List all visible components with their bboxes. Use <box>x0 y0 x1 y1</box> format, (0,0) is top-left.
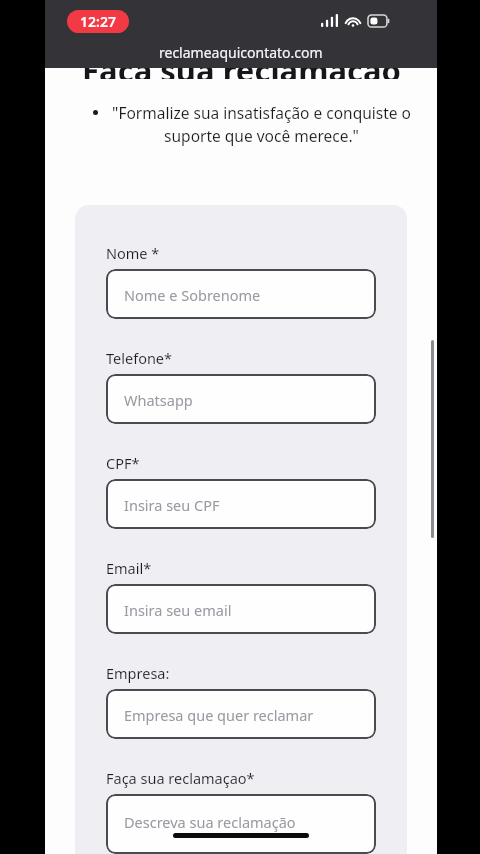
staticText: Whatsapp <box>124 390 193 410</box>
other: Battery <box>368 15 390 27</box>
staticText: Descreva sua reclamação <box>124 812 296 832</box>
button[interactable]: Empresa: <box>106 663 376 739</box>
staticText: Nome e Sobrenome <box>124 285 261 305</box>
staticText: Faça sua reclamação <box>82 58 401 79</box>
button[interactable]: Telefone* <box>106 348 376 424</box>
staticText: 12:27 <box>80 12 116 31</box>
staticText: Telefone* <box>106 348 173 368</box>
staticText: reclameaquicontato.com <box>159 43 323 62</box>
staticText: Faça sua reclamaçao* <box>106 768 255 788</box>
staticText: CPF* <box>106 453 140 473</box>
staticText: Empresa: <box>106 663 170 683</box>
button[interactable]: Faça sua reclamaçao* <box>106 768 376 854</box>
staticText: Empresa que quer reclamar <box>124 705 314 725</box>
other: Cellular signal <box>321 14 338 27</box>
staticText: Insira seu CPF <box>124 495 220 515</box>
button[interactable]: Nome * <box>106 243 376 319</box>
staticText: Email* <box>106 558 152 578</box>
staticText: Nome * <box>106 243 160 263</box>
button[interactable]: Email* <box>106 558 376 634</box>
staticText: Insira seu email <box>124 600 232 620</box>
button[interactable]: CPF* <box>106 453 376 529</box>
other: Wi-Fi <box>345 14 361 27</box>
button[interactable]: 12:27 <box>67 10 129 33</box>
staticText: "Formalize sua insatisfação e conquiste … <box>108 102 415 147</box>
